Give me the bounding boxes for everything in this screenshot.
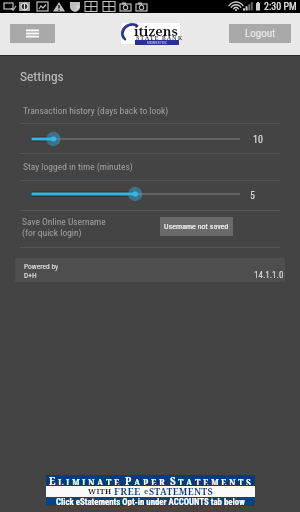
button[interactable]: Logout [229,24,291,43]
staticText: A [186,477,195,485]
staticText: P [125,475,134,485]
staticText: M [211,477,221,485]
staticText: I [66,477,72,485]
staticText: A [134,477,143,485]
staticText: S [170,475,178,485]
staticText: Save Online Username [22,216,106,227]
staticText: e [144,486,149,496]
staticText: E [49,475,58,485]
staticText: M [72,477,82,485]
staticText: A [97,477,106,485]
button[interactable]: Username not saved [160,217,233,236]
staticText: STATE BANK [136,34,184,42]
button[interactable]: Menu [10,24,55,43]
staticText: 5 [250,190,255,202]
staticText: Stay logged in time (minutes) [23,161,133,172]
staticText: T [238,477,246,485]
staticText: E [203,477,211,485]
staticText: I [82,477,88,485]
button[interactable] [0,183,300,205]
staticText: MEMBER FDIC [147,41,167,45]
staticText: 2:30 PM [264,1,297,13]
staticText: P [143,477,151,485]
staticText: S [246,477,253,485]
staticText: N [88,477,97,485]
staticText: STATEMENTS [149,485,213,496]
button[interactable] [0,128,300,150]
button[interactable]: E [46,475,255,506]
staticText: D+H [24,271,37,280]
staticText: Powered by [24,262,59,271]
staticText: R [159,477,167,485]
staticText: L [58,477,66,485]
staticText: N [229,477,238,485]
staticText: T [178,477,186,485]
staticText: (for quick login) [22,227,82,238]
staticText: 10 [253,134,263,146]
staticText: Transaction history (days back to look) [23,105,169,116]
staticText: T [195,477,203,485]
staticText: Username not saved [164,222,229,231]
staticText: FREE [114,485,144,496]
staticText: E [151,477,159,485]
staticText: E [221,477,229,485]
staticText: E [114,477,122,485]
staticText: T [106,477,114,485]
staticText: itizens [134,22,178,40]
staticText: Logout [245,27,276,40]
staticText: 14.1.1.0 [254,270,284,281]
staticText: Settings [20,68,64,84]
staticText: WITH [88,486,114,496]
staticText: Click eStatements Opt-in under ACCOUNTS … [56,497,245,506]
